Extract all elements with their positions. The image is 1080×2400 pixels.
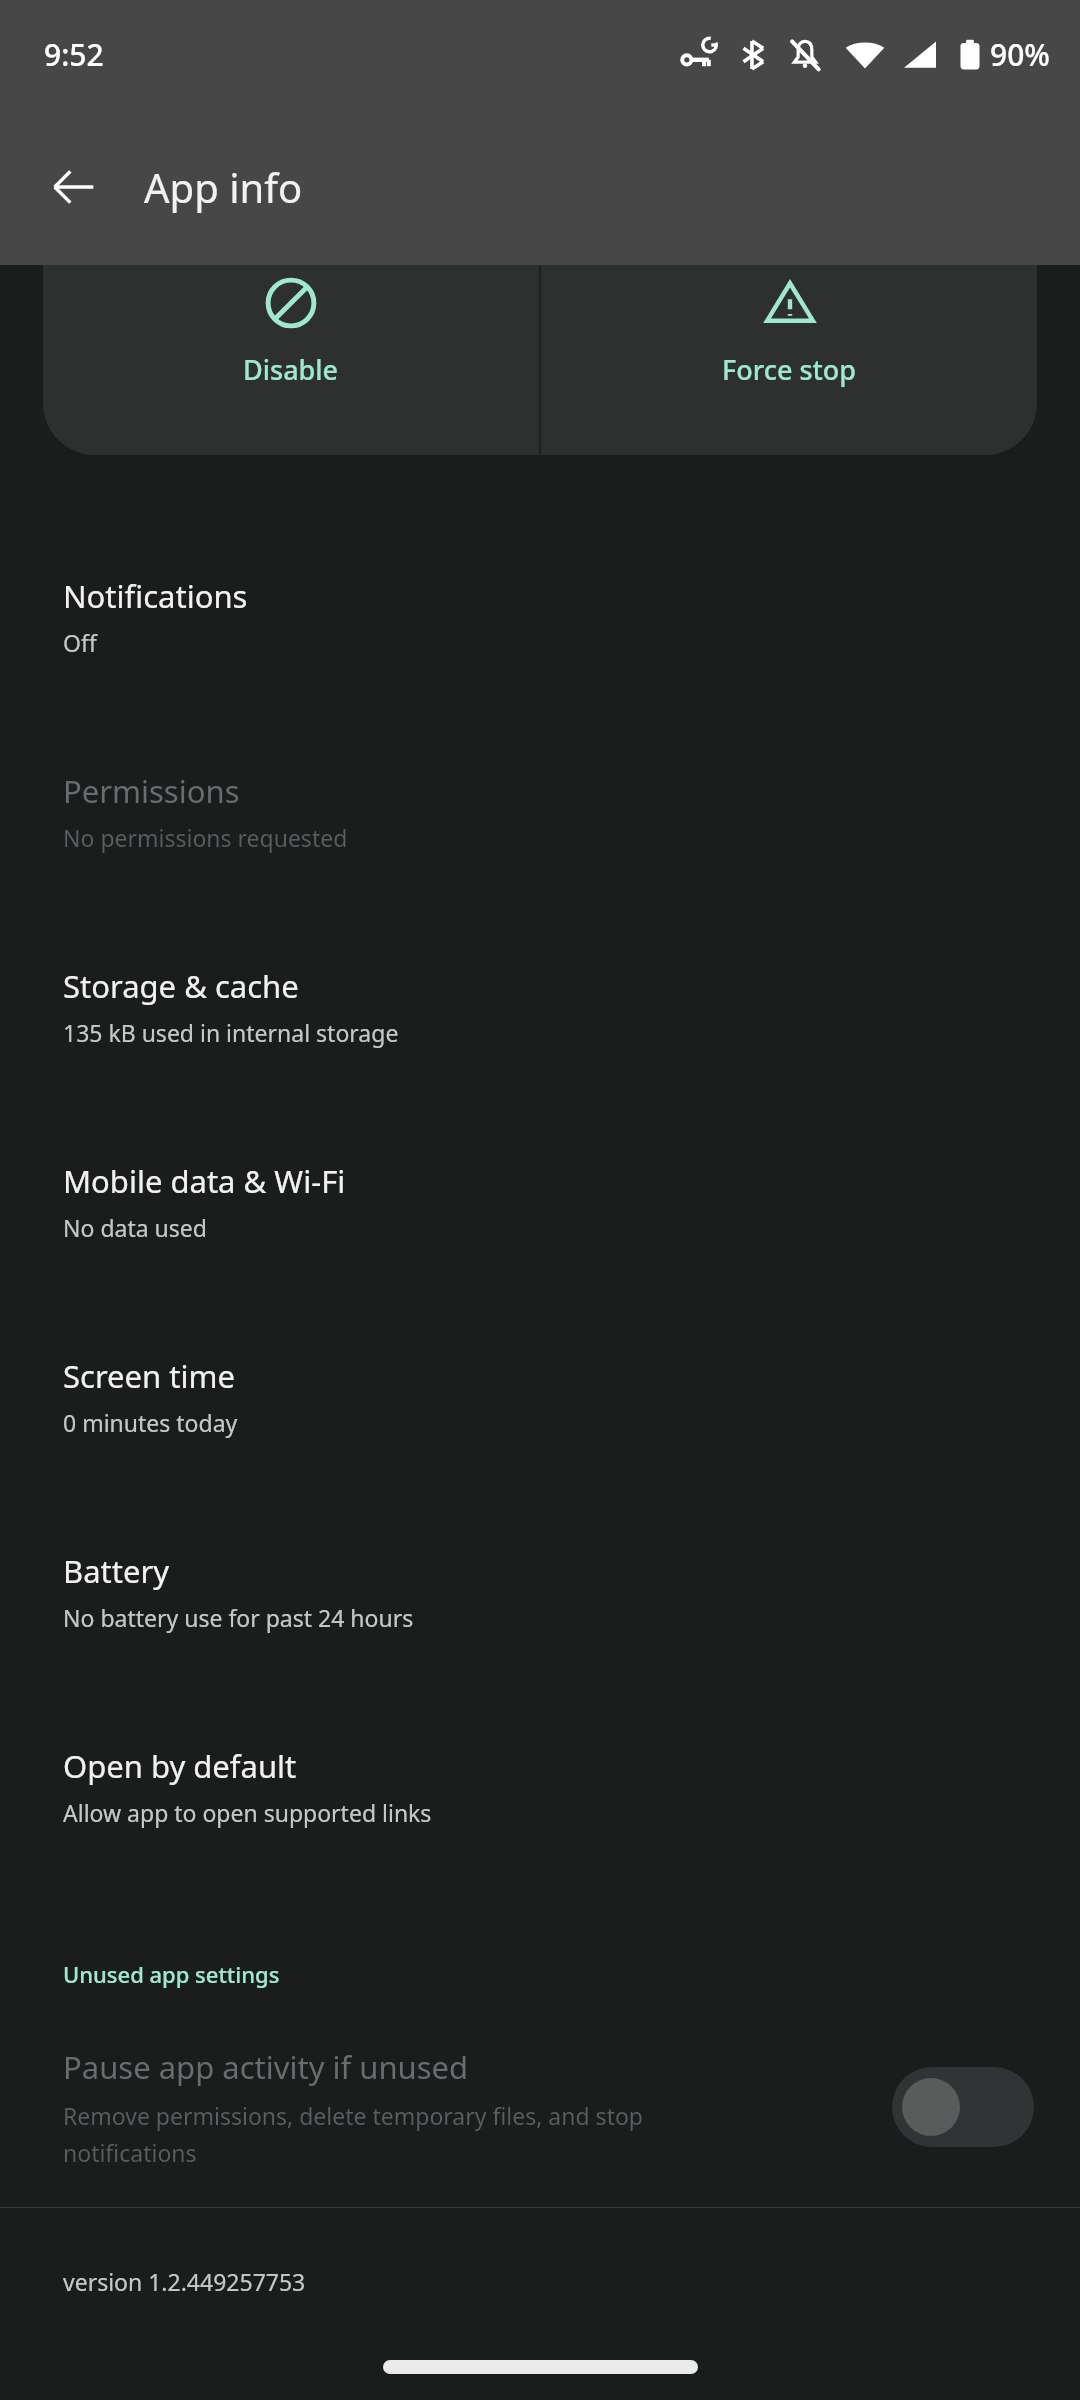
- button[interactable]: Open by default: [0, 1689, 1080, 1884]
- staticText: Permissions: [63, 770, 240, 812]
- staticText: Notifications: [63, 575, 248, 617]
- staticText: No battery use for past 24 hours: [63, 1602, 414, 1633]
- button[interactable]: Battery: [0, 1494, 1080, 1689]
- staticText: version 1.2.449257753: [63, 2266, 306, 2297]
- staticText: Off: [63, 627, 97, 658]
- button[interactable]: Storage & cache: [0, 909, 1080, 1104]
- staticText: Remove permissions, delete temporary fil…: [63, 2100, 643, 2131]
- staticText: Open by default: [63, 1745, 297, 1787]
- button[interactable]: Navigate up: [26, 139, 122, 235]
- button[interactable]: Pause app activity if unused toggle: [892, 2067, 1034, 2147]
- staticText: Force stop: [722, 351, 857, 388]
- staticText: 90%: [990, 34, 1050, 75]
- button[interactable]: Force stop: [541, 265, 1037, 455]
- staticText: Allow app to open supported links: [63, 1797, 432, 1828]
- staticText: Unused app settings: [63, 1959, 280, 1989]
- staticText: Battery: [63, 1550, 170, 1592]
- staticText: Storage & cache: [63, 965, 299, 1007]
- staticText: Mobile data & Wi-Fi: [63, 1160, 346, 1202]
- staticText: notifications: [63, 2137, 197, 2168]
- button[interactable]: Mobile data & Wi-Fi: [0, 1104, 1080, 1299]
- button[interactable]: Disable: [43, 265, 539, 455]
- staticText: No data used: [63, 1212, 207, 1243]
- button[interactable]: Notifications: [0, 519, 1080, 714]
- staticText: No permissions requested: [63, 822, 348, 853]
- button[interactable]: Screen time: [0, 1299, 1080, 1494]
- staticText: App info: [144, 160, 303, 214]
- button[interactable]: Pause app activity if unused: [0, 2046, 1080, 2168]
- staticText: 135 kB used in internal storage: [63, 1017, 399, 1048]
- staticText: 0 minutes today: [63, 1407, 238, 1438]
- staticText: Pause app activity if unused: [63, 2046, 469, 2088]
- button[interactable]: Permissions: [0, 714, 1080, 909]
- staticText: 9:52: [44, 34, 104, 75]
- staticText: Screen time: [63, 1355, 235, 1397]
- staticText: Disable: [243, 351, 339, 388]
